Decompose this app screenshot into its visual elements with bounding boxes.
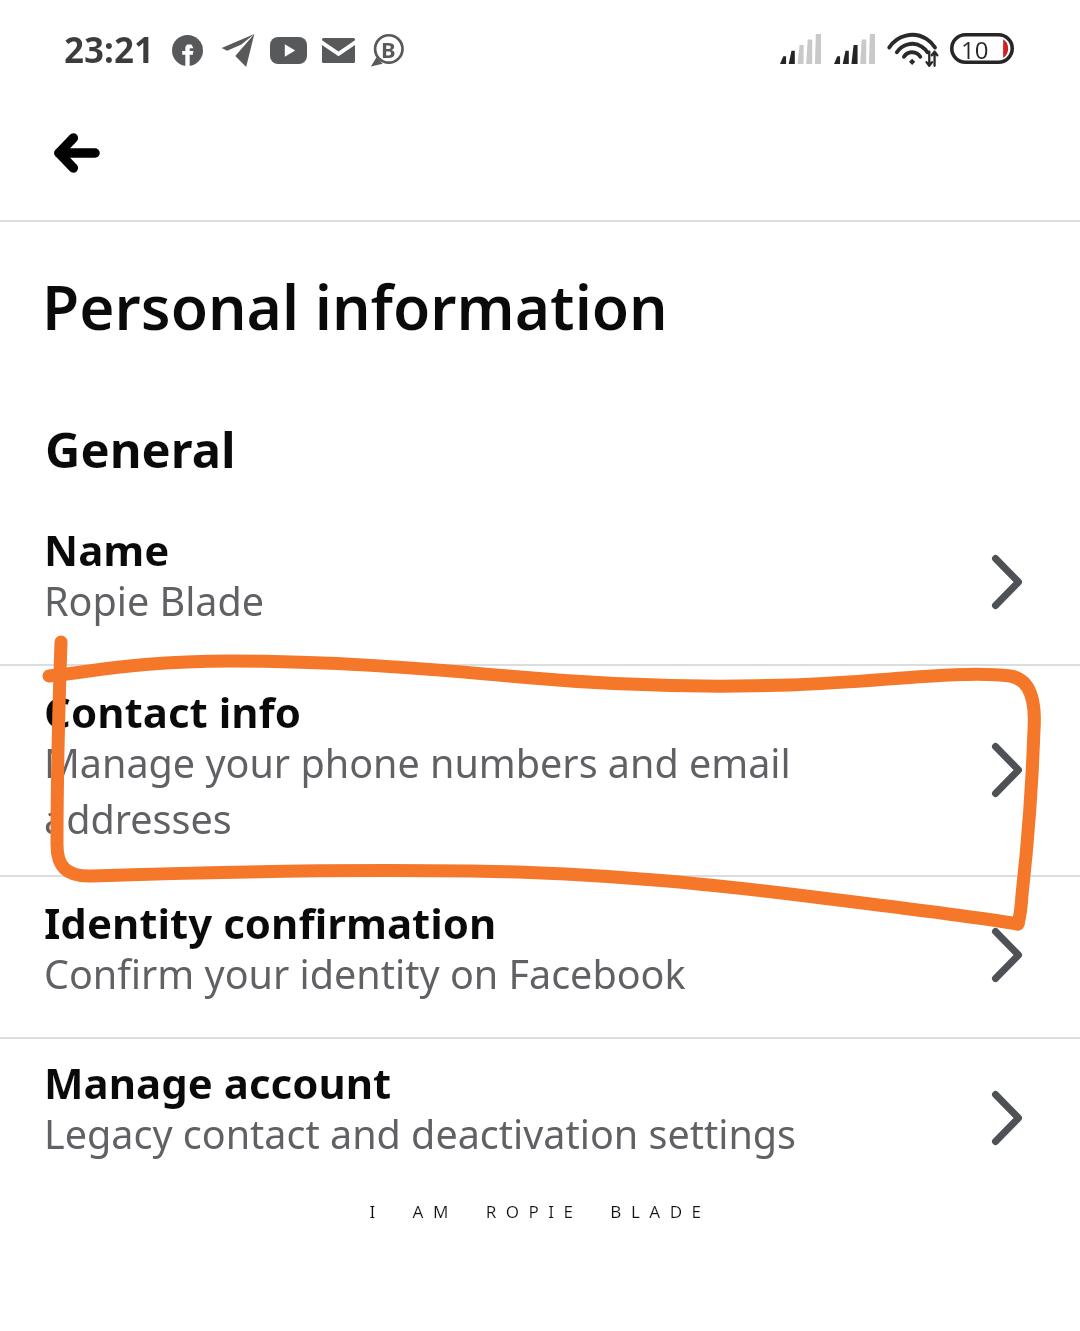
staticText: Name bbox=[44, 521, 170, 578]
other: Identity confirmation bbox=[968, 916, 1046, 994]
staticText: 23:21 bbox=[64, 26, 154, 74]
staticText: Ropie Blade bbox=[44, 574, 265, 628]
staticText: Identity confirmation bbox=[44, 894, 497, 951]
staticText: Confirm your identity on Facebook bbox=[44, 947, 686, 1001]
staticText: General bbox=[45, 416, 236, 483]
staticText: I AM ROPIE BLADE bbox=[0, 1200, 1080, 1223]
staticText: Legacy contact and deactivation settings bbox=[44, 1107, 797, 1161]
staticText: Contact info bbox=[44, 683, 302, 740]
button[interactable]: Identity confirmation bbox=[0, 875, 1080, 1037]
other: Name bbox=[968, 543, 1046, 621]
staticText: B bbox=[381, 34, 396, 64]
other: Manage account bbox=[968, 1079, 1046, 1157]
staticText: 10 bbox=[961, 33, 989, 64]
staticText: Personal information bbox=[42, 265, 668, 347]
button[interactable]: Back bbox=[37, 114, 115, 192]
staticText: Manage account bbox=[44, 1054, 392, 1111]
button[interactable]: Contact info bbox=[0, 664, 1080, 875]
button[interactable]: Name bbox=[0, 520, 1080, 664]
staticText: Manage your phone numbers and email addr… bbox=[44, 736, 804, 846]
other: Contact info bbox=[968, 731, 1046, 809]
button[interactable]: Manage account bbox=[0, 1037, 1080, 1180]
